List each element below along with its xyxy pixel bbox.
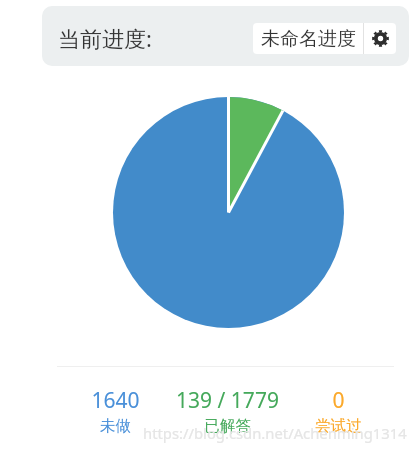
staticText: 已解答 (204, 416, 251, 436)
button[interactable]: 0 (282, 386, 395, 436)
staticText: 0 (332, 386, 345, 415)
button[interactable]: 1640 (59, 386, 172, 436)
staticText: https://blog.csdn.net/Achenming1314 (143, 423, 407, 443)
staticText: 尝试过 (315, 416, 362, 436)
staticText: 1640 (91, 386, 140, 415)
staticText: 当前进度: (58, 23, 152, 53)
button[interactable]: 139 / 1779 (171, 386, 284, 436)
staticText: 未做 (100, 416, 131, 436)
staticText: 未命名进度 (261, 27, 356, 51)
button[interactable]: Settings (364, 23, 396, 54)
button[interactable]: 未命名进度 (253, 23, 363, 54)
staticText: 139 / 1779 (176, 386, 279, 415)
other: Progress pie chart (113, 97, 344, 328)
